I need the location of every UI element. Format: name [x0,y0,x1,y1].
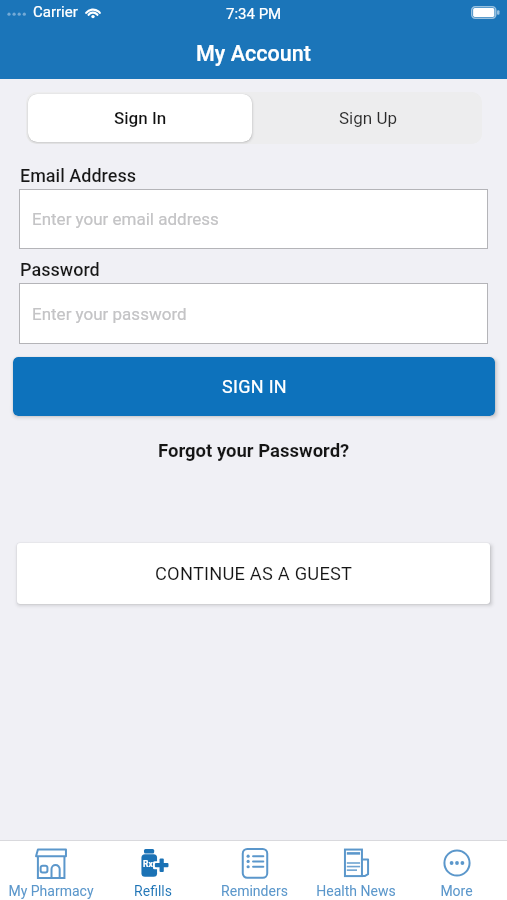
other: More [440,846,474,880]
button[interactable]: More [406,841,507,900]
staticText: Reminders [221,883,288,899]
button[interactable]: Sign Up [254,92,482,144]
button[interactable]: Sign In [28,94,252,142]
button[interactable]: Enter your password [19,283,488,344]
staticText: CONTINUE AS A GUEST [155,563,353,584]
other: Health News [339,846,373,880]
staticText: Sign Up [339,108,397,128]
button[interactable]: My Pharmacy [0,841,102,900]
staticText: Refills [134,883,172,899]
staticText: 7:34 PM [226,5,282,23]
other: My Pharmacy [34,846,68,880]
staticText: More [440,883,473,899]
other: Reminders [238,846,272,880]
staticText: Health News [316,883,396,899]
staticText: My Account [196,41,311,66]
staticText: Password [20,259,100,280]
staticText: Carrier [33,3,78,21]
staticText: My Pharmacy [8,883,94,899]
staticText: Enter your password [32,304,187,324]
button[interactable]: Health News [305,841,406,900]
other: Refills [136,846,170,880]
staticText: Email Address [20,165,137,186]
staticText: SIGN IN [222,376,287,397]
button[interactable]: CONTINUE AS A GUEST [17,543,490,604]
button[interactable]: Reminders [204,841,305,900]
staticText: Rx [143,859,153,869]
button[interactable]: Enter your email address [19,189,488,249]
staticText: Sign In [114,108,167,128]
button[interactable]: Forgot your Password? [150,436,358,466]
staticText: Enter your email address [32,209,219,229]
button[interactable]: Refills [102,841,204,900]
button[interactable]: SIGN IN [13,357,495,416]
